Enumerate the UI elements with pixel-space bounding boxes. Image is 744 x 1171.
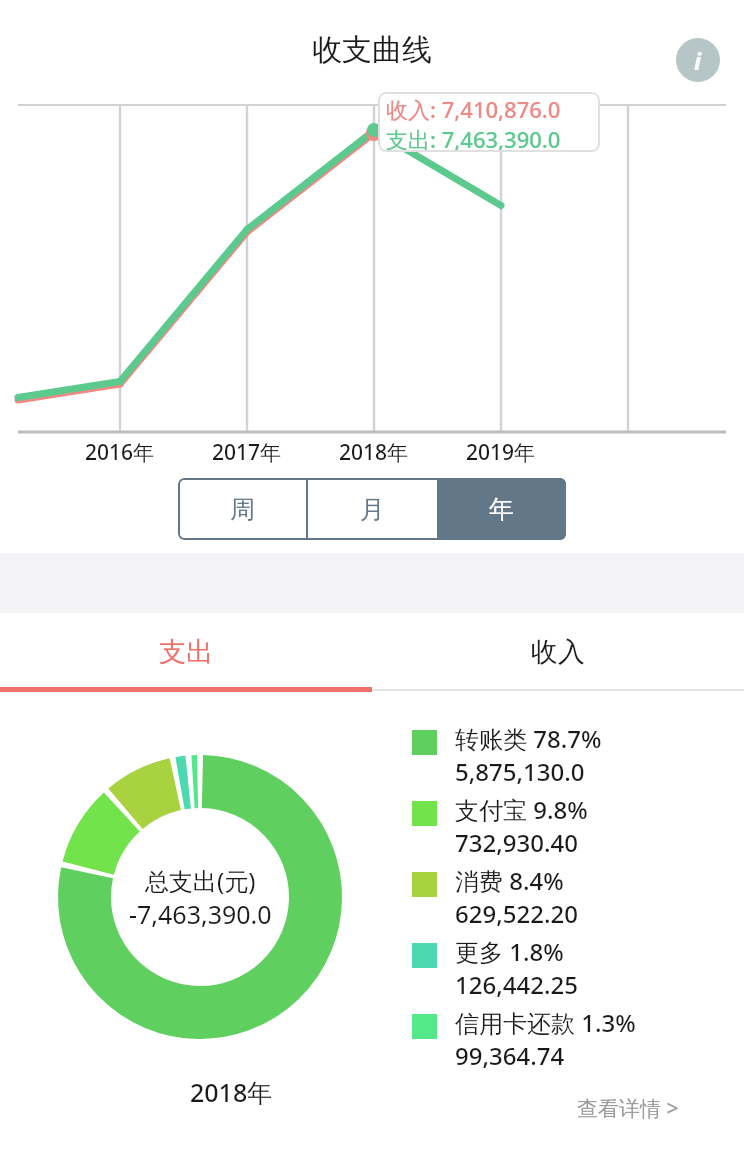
staticText: 年: [489, 494, 514, 525]
button[interactable]: 查看详情 >: [573, 1090, 683, 1127]
button[interactable]: Info: [676, 38, 720, 82]
staticText: 查看详情 >: [577, 1094, 679, 1123]
staticText: 支付宝 9.8%: [455, 793, 588, 826]
button[interactable]: 年: [437, 478, 566, 540]
staticText: 月: [360, 494, 385, 525]
staticText: 周: [230, 494, 255, 525]
staticText: 2018年: [339, 438, 409, 467]
staticText: 2018年: [190, 1075, 273, 1109]
staticText: 总支出(元): [145, 864, 256, 897]
staticText: -7,463,390.0: [129, 897, 272, 931]
staticText: 629,522.20: [455, 897, 578, 930]
staticText: 支出: 7,463,390.0: [386, 124, 561, 152]
staticText: 5,875,130.0: [455, 755, 585, 788]
button[interactable]: 支出: [0, 613, 372, 691]
button[interactable]: 月: [308, 478, 437, 540]
staticText: 支出: [159, 635, 213, 669]
staticText: 126,442.25: [455, 968, 578, 1001]
staticText: 收入: 7,410,876.0: [386, 94, 561, 124]
staticText: 2017年: [212, 438, 282, 467]
staticText: 消费 8.4%: [455, 864, 564, 897]
staticText: 转账类 78.7%: [455, 722, 602, 755]
staticText: 2019年: [466, 438, 536, 467]
staticText: 2016年: [85, 438, 155, 467]
staticText: 732,930.40: [455, 826, 578, 859]
button[interactable]: 周: [178, 478, 306, 540]
staticText: 信用卡还款 1.3%: [455, 1006, 636, 1039]
staticText: 99,364.74: [455, 1039, 565, 1072]
staticText: 更多 1.8%: [455, 935, 564, 968]
staticText: i: [694, 44, 702, 77]
staticText: 收支曲线: [312, 31, 432, 69]
staticText: 收入: [531, 635, 585, 669]
button[interactable]: 收入: [372, 613, 744, 691]
